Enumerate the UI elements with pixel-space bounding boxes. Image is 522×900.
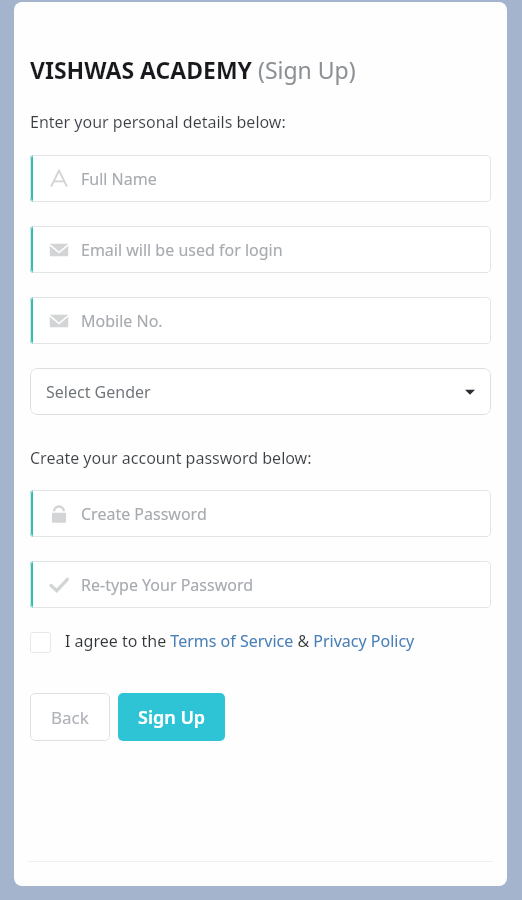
staticText: Sign Up	[138, 705, 206, 730]
button[interactable]: Sign Up	[118, 693, 225, 741]
button[interactable]: Re-type Your Password	[30, 561, 491, 608]
button[interactable]: Create Password	[30, 490, 491, 537]
button[interactable]: Mobile No.	[30, 297, 491, 344]
staticText: Select Gender	[46, 381, 465, 403]
staticText: Full Name	[81, 168, 157, 190]
button[interactable]: Full Name	[30, 155, 491, 202]
staticText: Create your account password below:	[30, 447, 312, 469]
button[interactable]: I agree to the Terms of Service & Privac…	[65, 630, 415, 652]
button[interactable]: Back	[30, 693, 110, 741]
staticText: Mobile No.	[81, 310, 163, 332]
button[interactable]: Select Gender	[30, 368, 491, 415]
staticText: Enter your personal details below:	[30, 111, 286, 133]
staticText: Create Password	[81, 503, 207, 525]
staticText: Back	[51, 706, 89, 729]
staticText: Re-type Your Password	[81, 574, 254, 596]
staticText: Email will be used for login	[81, 239, 283, 261]
staticText: VISHWAS ACADEMY (Sign Up)	[30, 54, 356, 85]
button[interactable]: Agree to terms checkbox	[30, 632, 51, 653]
button[interactable]: Email will be used for login	[30, 226, 491, 273]
